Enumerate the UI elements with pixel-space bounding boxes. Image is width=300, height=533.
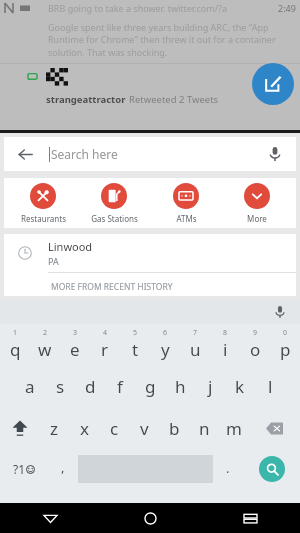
staticText: o — [250, 338, 261, 361]
button[interactable]: Gas Stations — [82, 183, 146, 224]
staticText: w — [38, 338, 52, 361]
button[interactable]: z — [39, 407, 69, 449]
button[interactable]: j — [195, 365, 225, 407]
staticText: t — [132, 338, 139, 361]
staticText: 2:49 — [278, 2, 296, 14]
button[interactable]: 3 — [60, 324, 90, 365]
staticText: 0 — [283, 328, 288, 338]
button[interactable]: Backspace — [249, 407, 300, 449]
button[interactable]: a — [15, 365, 45, 407]
staticText: PA — [48, 255, 59, 267]
staticText: Gas Stations — [91, 213, 138, 224]
staticText: , — [61, 458, 65, 476]
button[interactable]: c — [99, 407, 129, 449]
staticText: Google spent like three years building A… — [48, 21, 286, 59]
button[interactable]: , — [48, 449, 78, 489]
button[interactable]: 9 — [240, 324, 270, 365]
staticText: j — [208, 375, 213, 398]
button[interactable]: Compose Tweet — [252, 63, 294, 105]
staticText: 9 — [253, 328, 258, 338]
staticText: Linwood — [48, 239, 93, 254]
staticText: i — [223, 338, 228, 361]
staticText: q — [10, 338, 21, 361]
staticText: a — [25, 375, 35, 398]
staticText: z — [50, 417, 58, 440]
staticText: r — [101, 338, 109, 361]
button[interactable]: 8 — [210, 324, 240, 365]
button[interactable]: Back — [4, 137, 296, 171]
staticText: s — [56, 375, 65, 398]
staticText: BRB going to take a shower. twitter.com/… — [48, 2, 228, 14]
button[interactable]: v — [129, 407, 159, 449]
staticText: Restaurants — [21, 213, 66, 224]
staticText: strangeattractor — [46, 93, 126, 106]
staticText: ?1 — [13, 461, 26, 477]
button[interactable]: . — [213, 449, 243, 489]
staticText: MORE FROM RECENT HISTORY — [51, 281, 173, 293]
staticText: e — [70, 338, 80, 361]
button[interactable]: h — [165, 365, 195, 407]
staticText: 3 — [73, 328, 78, 338]
button[interactable]: 4 — [90, 324, 120, 365]
button[interactable]: 7 — [180, 324, 210, 365]
staticText: f — [117, 375, 123, 398]
button[interactable]: 6 — [150, 324, 180, 365]
staticText: d — [85, 375, 96, 398]
staticText: 6 — [163, 328, 168, 338]
button[interactable]: 1 — [0, 324, 30, 365]
staticText: Retweeted 2 Tweets — [129, 93, 219, 106]
button[interactable]: Recents — [200, 503, 300, 533]
button[interactable]: x — [69, 407, 99, 449]
button[interactable]: Linwood — [4, 234, 296, 272]
staticText: More — [247, 213, 267, 224]
button[interactable]: Search — [259, 456, 285, 482]
button[interactable]: More — [225, 183, 289, 224]
button[interactable]: f — [105, 365, 135, 407]
button[interactable]: ?1 — [0, 449, 48, 489]
staticText: v — [140, 417, 149, 440]
staticText: k — [235, 375, 245, 398]
staticText: p — [280, 338, 291, 361]
button[interactable]: s — [45, 365, 75, 407]
staticText: c — [110, 417, 119, 440]
staticText: u — [190, 338, 201, 361]
staticText: y — [161, 338, 170, 361]
staticText: Search here — [51, 146, 118, 162]
staticText: m — [226, 417, 242, 440]
staticText: . — [226, 459, 230, 477]
button[interactable]: Voice search — [264, 143, 286, 165]
button[interactable]: 2 — [30, 324, 60, 365]
staticText: n — [199, 417, 210, 440]
button[interactable]: n — [189, 407, 219, 449]
staticText: 4 — [103, 328, 108, 338]
button[interactable]: l — [255, 365, 285, 407]
button[interactable]: k — [225, 365, 255, 407]
staticText: h — [175, 375, 186, 398]
staticText: x — [80, 417, 89, 440]
button[interactable]: m — [219, 407, 249, 449]
button[interactable]: Restaurants — [11, 183, 75, 224]
staticText: ATMs — [176, 213, 197, 224]
button[interactable]: b — [159, 407, 189, 449]
button[interactable]: Shift — [0, 407, 39, 449]
button[interactable]: Voice input — [270, 302, 290, 322]
button[interactable]: g — [135, 365, 165, 407]
button[interactable]: Back — [0, 503, 100, 533]
staticText: 8 — [223, 328, 228, 338]
staticText: 7 — [193, 328, 198, 338]
staticText: b — [169, 417, 180, 440]
staticText: g — [145, 375, 156, 398]
staticText: 5 — [133, 328, 138, 338]
button[interactable]: 0 — [270, 324, 300, 365]
button[interactable]: 5 — [120, 324, 150, 365]
staticText: 2 — [43, 328, 48, 338]
staticText: 1 — [13, 328, 18, 338]
button[interactable]: d — [75, 365, 105, 407]
button[interactable]: Back — [14, 143, 36, 165]
button[interactable]: ATMs — [154, 183, 218, 224]
staticText: l — [268, 375, 273, 398]
button[interactable]: Home — [100, 503, 200, 533]
